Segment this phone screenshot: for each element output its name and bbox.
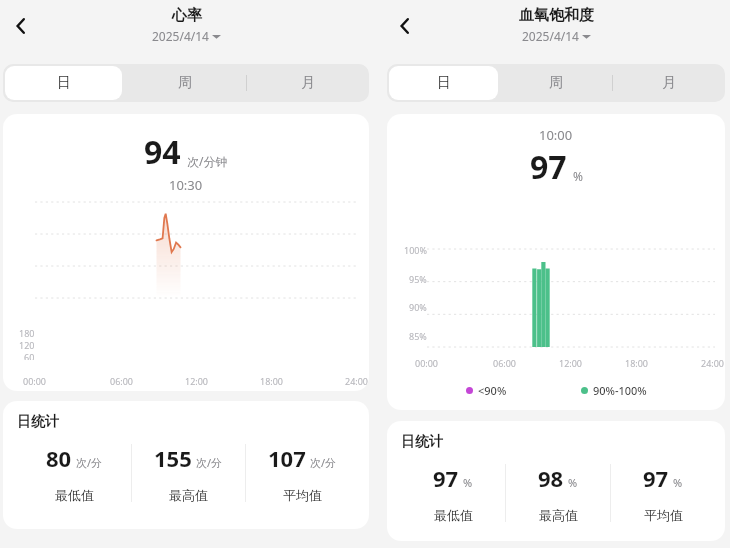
staticText: 90% bbox=[409, 301, 427, 313]
staticText: 18:00 bbox=[625, 357, 649, 369]
staticText: 血氧饱和度 bbox=[519, 6, 594, 25]
staticText: 06:00 bbox=[493, 357, 517, 369]
staticText: 97 bbox=[643, 463, 669, 493]
button[interactable]: 月 bbox=[613, 64, 725, 102]
staticText: 次/分钟 bbox=[187, 153, 228, 169]
staticText: 月 bbox=[301, 74, 315, 92]
staticText: 最低值 bbox=[434, 507, 473, 523]
staticText: 24:00 bbox=[345, 375, 369, 387]
staticText: 155 bbox=[154, 443, 192, 473]
button[interactable]: Back bbox=[3, 8, 39, 44]
staticText: 最低值 bbox=[55, 487, 94, 503]
staticText: 平均值 bbox=[283, 487, 322, 503]
staticText: 2025/4/14 bbox=[522, 28, 579, 44]
staticText: 24:00 bbox=[701, 357, 725, 369]
staticText: % bbox=[463, 475, 473, 490]
staticText: 次/分 bbox=[196, 455, 223, 470]
staticText: 85% bbox=[409, 330, 427, 342]
staticText: 次/分 bbox=[310, 455, 337, 470]
staticText: 2025/4/14 bbox=[152, 28, 209, 44]
staticText: 日统计 bbox=[17, 413, 59, 431]
staticText: 95% bbox=[409, 273, 427, 285]
staticText: 最高值 bbox=[169, 487, 208, 503]
button[interactable]: 日 bbox=[389, 66, 498, 100]
staticText: 日 bbox=[57, 74, 71, 92]
staticText: 97 bbox=[530, 145, 567, 189]
staticText: 日统计 bbox=[401, 433, 443, 451]
button[interactable]: 月 bbox=[247, 64, 369, 102]
staticText: 最高值 bbox=[539, 507, 578, 523]
staticText: 80 bbox=[46, 443, 72, 473]
staticText: 06:00 bbox=[110, 375, 134, 387]
staticText: % bbox=[573, 168, 583, 184]
staticText: 12:00 bbox=[185, 375, 209, 387]
staticText: 18:00 bbox=[260, 375, 284, 387]
staticText: 107 bbox=[268, 443, 306, 473]
button[interactable]: Back bbox=[387, 8, 423, 44]
staticText: <90% bbox=[478, 383, 507, 398]
button[interactable]: 周 bbox=[124, 64, 246, 102]
button[interactable]: 日 bbox=[5, 66, 122, 100]
staticText: 周 bbox=[178, 74, 192, 92]
button[interactable]: 周 bbox=[500, 64, 612, 102]
staticText: 00:00 bbox=[415, 357, 439, 369]
staticText: 月 bbox=[662, 74, 676, 92]
staticText: 97 bbox=[433, 463, 459, 493]
staticText: 100% bbox=[404, 244, 427, 256]
staticText: 180 bbox=[19, 327, 35, 339]
staticText: 00:00 bbox=[23, 375, 47, 387]
staticText: 120 bbox=[19, 339, 35, 351]
staticText: % bbox=[673, 475, 683, 490]
staticText: 12:00 bbox=[559, 357, 583, 369]
staticText: 周 bbox=[549, 74, 563, 92]
staticText: 98 bbox=[538, 463, 564, 493]
staticText: 90%-100% bbox=[593, 383, 647, 398]
staticText: 心率 bbox=[172, 6, 202, 25]
staticText: 10:30 bbox=[169, 176, 203, 194]
staticText: 94 bbox=[144, 130, 181, 174]
staticText: 平均值 bbox=[644, 507, 683, 523]
staticText: 60 bbox=[24, 351, 35, 360]
staticText: 10:00 bbox=[539, 126, 573, 144]
staticText: % bbox=[568, 475, 578, 490]
staticText: 日 bbox=[437, 74, 451, 92]
staticText: 次/分 bbox=[76, 455, 103, 470]
